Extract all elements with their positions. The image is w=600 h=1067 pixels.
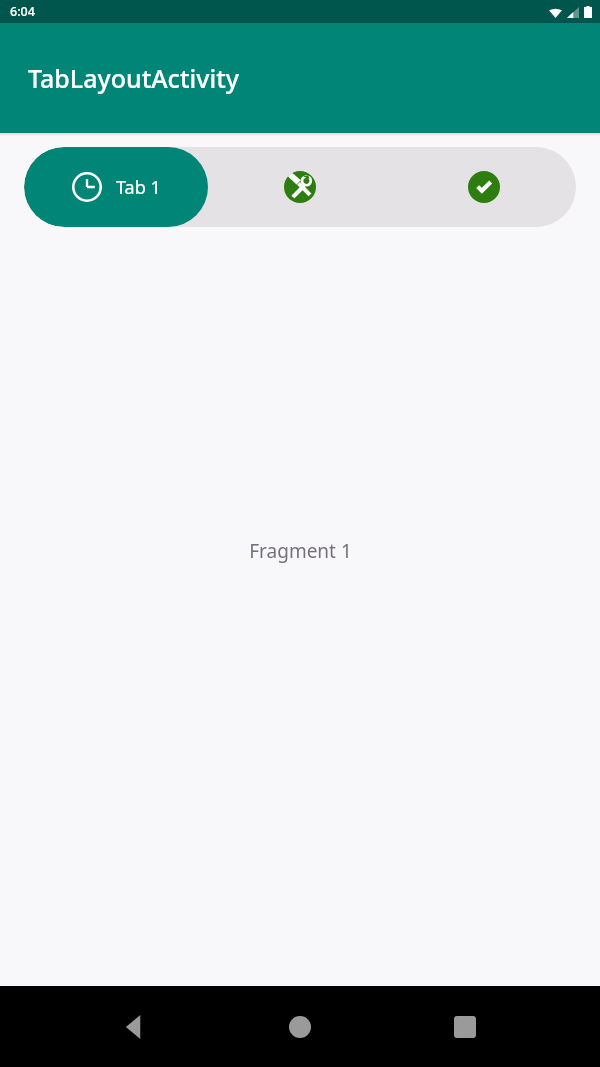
button[interactable]: Recent apps: [435, 997, 495, 1057]
button[interactable]: Home: [270, 997, 330, 1057]
staticText: 6:04: [10, 3, 35, 20]
staticText: TabLayoutActivity: [28, 61, 239, 95]
staticText: Fragment 1: [249, 538, 352, 564]
button[interactable]: Build tab: [208, 147, 392, 227]
button[interactable]: Tab 1: [24, 147, 208, 227]
button[interactable]: Done tab: [392, 147, 576, 227]
button[interactable]: Back: [105, 997, 165, 1057]
staticText: Tab 1: [116, 175, 161, 200]
